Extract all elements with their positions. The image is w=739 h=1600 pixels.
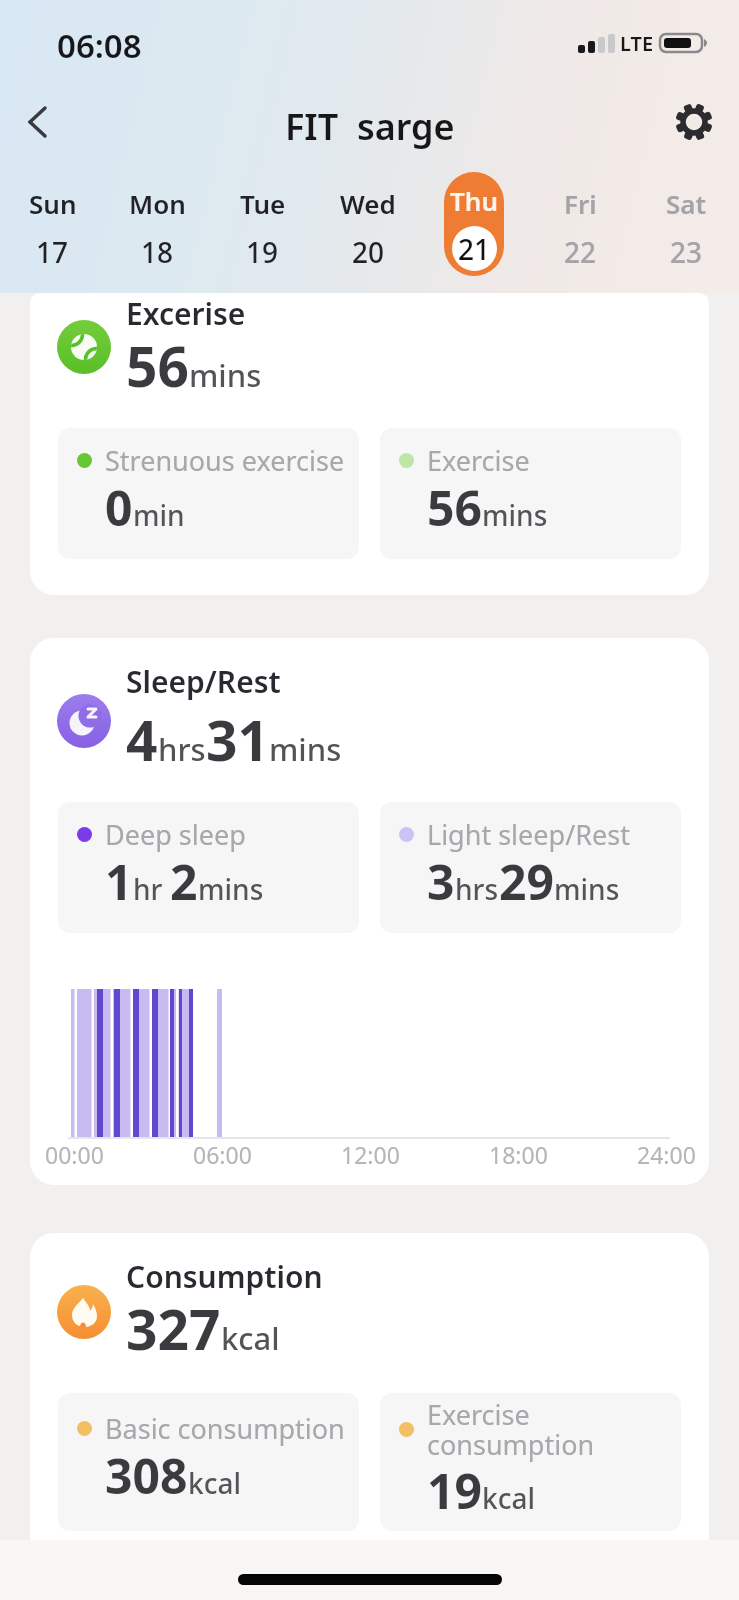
staticText: 20	[352, 233, 385, 271]
staticText: 56	[427, 475, 482, 540]
staticText: hr	[133, 870, 170, 908]
staticText: kcal	[188, 1464, 241, 1502]
staticText: min	[133, 496, 185, 534]
staticText: Exercise consumption	[427, 1396, 595, 1462]
staticText: Basic consumption	[105, 1410, 345, 1447]
staticText: Excerise	[126, 293, 246, 334]
button[interactable]: Thu	[444, 172, 504, 276]
staticText: Sleep/Rest	[126, 661, 281, 702]
button[interactable]: Wed	[315, 172, 421, 271]
staticText: 4	[126, 702, 158, 777]
staticText: mins	[482, 496, 548, 534]
button[interactable]: Excerise	[30, 293, 709, 595]
staticText: 1	[105, 849, 133, 914]
button[interactable]: Mon	[105, 172, 210, 271]
staticText: mins	[189, 354, 262, 396]
staticText: Light sleep/Rest	[427, 816, 630, 853]
staticText: 06:08	[57, 23, 142, 68]
staticText: Sun	[29, 186, 77, 221]
staticText: Mon	[129, 186, 186, 221]
button[interactable]: Consumption	[30, 1233, 709, 1560]
button[interactable]: Exercise consumption	[380, 1393, 681, 1531]
staticText: 19	[246, 233, 279, 271]
staticText: Deep sleep	[105, 816, 246, 853]
staticText: 19	[427, 1458, 482, 1523]
staticText: mins	[198, 870, 264, 908]
staticText: 3	[427, 849, 455, 914]
button[interactable]: Fri	[527, 172, 633, 271]
button[interactable]: Strenuous exercise	[58, 428, 359, 559]
staticText: Sat	[666, 186, 707, 221]
staticText: mins	[269, 728, 342, 770]
button[interactable]: Sat	[633, 172, 739, 271]
staticText: Fri	[564, 186, 597, 221]
staticText: 18	[141, 233, 174, 271]
staticText: 29	[499, 849, 554, 914]
staticText: hrs	[158, 728, 206, 770]
button[interactable]	[672, 100, 716, 144]
staticText: mins	[554, 870, 620, 908]
staticText: kcal	[221, 1317, 280, 1359]
staticText: 23	[670, 233, 703, 271]
staticText: 0	[105, 475, 133, 540]
staticText: Strenuous exercise	[105, 442, 345, 479]
staticText: Thu	[450, 183, 498, 218]
staticText: Consumption	[126, 1256, 323, 1297]
staticText: hrs	[455, 870, 499, 908]
staticText: 308	[105, 1443, 188, 1508]
staticText: 2	[170, 849, 198, 914]
staticText: Tue	[240, 186, 286, 221]
button[interactable]: Sun	[0, 172, 105, 271]
staticText: Wed	[340, 186, 396, 221]
staticText: 17	[36, 233, 69, 271]
button[interactable]: Sleep/Rest	[30, 638, 709, 1185]
staticText: kcal	[482, 1479, 535, 1517]
staticText: 327	[126, 1291, 221, 1366]
button[interactable]: Basic consumption	[58, 1393, 359, 1531]
staticText: FIT sarge	[285, 102, 455, 150]
staticText: 00:00	[45, 1139, 104, 1170]
staticText: 21	[458, 230, 491, 268]
staticText: 31	[206, 702, 269, 777]
staticText: 18:00	[489, 1139, 548, 1170]
staticText: 22	[564, 233, 597, 271]
staticText: 06:00	[193, 1139, 252, 1170]
staticText: 24:00	[637, 1139, 696, 1170]
staticText: Exercise	[427, 442, 530, 479]
button[interactable]	[28, 106, 50, 138]
button[interactable]: Light sleep/Rest	[380, 802, 681, 933]
button[interactable]: Exercise	[380, 428, 681, 559]
staticText: 56	[126, 328, 189, 403]
button[interactable]: Tue	[210, 172, 315, 271]
button[interactable]: Deep sleep	[58, 802, 359, 933]
staticText: LTE	[620, 30, 654, 57]
staticText: 12:00	[341, 1139, 400, 1170]
